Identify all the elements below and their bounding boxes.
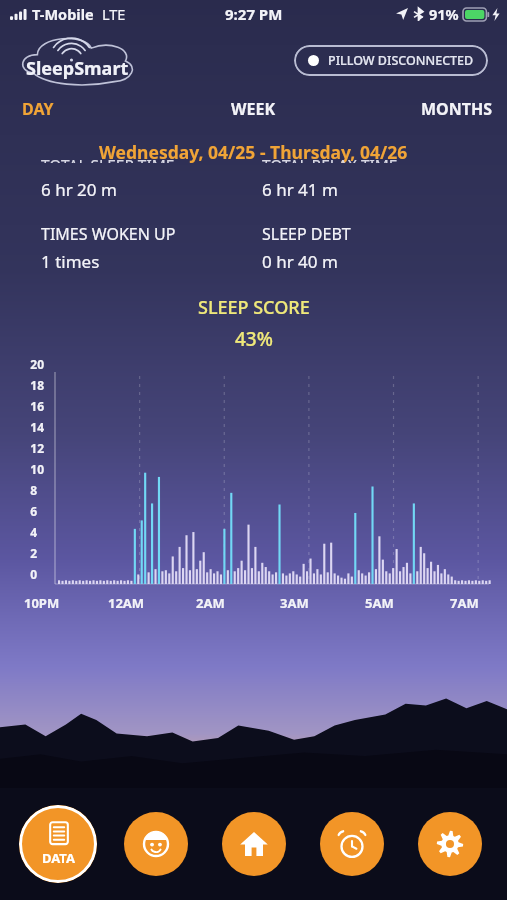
button[interactable]: Alarm — [320, 812, 384, 876]
button[interactable]: MONTHS — [338, 92, 507, 126]
staticText: 16 — [30, 398, 44, 414]
staticText: DATA — [42, 849, 75, 867]
staticText: 1 times — [41, 250, 100, 273]
staticText: 5AM — [365, 594, 394, 612]
staticText: SLEEP DEBT — [262, 223, 351, 245]
staticText: SLEEP SCORE — [198, 295, 310, 320]
staticText: DAY — [22, 98, 54, 120]
button[interactable]: Home — [222, 812, 286, 876]
staticText: 14 — [30, 419, 44, 435]
staticText: 18 — [30, 377, 44, 393]
staticText: 12 — [30, 440, 44, 456]
staticText: 9:27 PM — [225, 4, 283, 24]
staticText: T-Mobile — [32, 4, 94, 24]
staticText: 7AM — [450, 594, 479, 612]
staticText: 91% — [429, 4, 459, 24]
button[interactable]: PILLOW DISCONNECTED — [294, 45, 488, 76]
staticText: TOTAL RELAX TIME — [262, 155, 398, 163]
staticText: WEEK — [231, 98, 276, 120]
staticText: Wednesday, 04/25 - Thursday, 04/26 — [99, 140, 408, 164]
staticText: MONTHS — [421, 98, 493, 120]
staticText: 6 — [30, 503, 37, 519]
button[interactable]: WEEK — [169, 92, 338, 126]
staticText: 3AM — [280, 594, 309, 612]
staticText: 12AM — [108, 594, 145, 612]
button[interactable]: Baby — [124, 812, 188, 876]
staticText: 10PM — [24, 594, 60, 612]
staticText: 0 hr 40 m — [262, 250, 338, 273]
staticText: 0 — [30, 566, 37, 582]
staticText: 20 — [30, 356, 44, 372]
button[interactable]: Settings — [418, 812, 482, 876]
staticText: 2 — [30, 545, 37, 561]
staticText: SleepSmart — [26, 56, 129, 81]
button[interactable]: Data — [19, 805, 97, 883]
staticText: 2AM — [196, 594, 225, 612]
staticText: 4 — [30, 524, 37, 540]
staticText: 10 — [30, 461, 44, 477]
staticText: 6 hr 20 m — [41, 178, 117, 201]
staticText: TIMES WOKEN UP — [41, 223, 176, 245]
button[interactable]: SleepSmart logo — [22, 33, 132, 87]
staticText: TOTAL SLEEP TIME — [41, 155, 175, 163]
staticText: 8 — [30, 482, 37, 498]
staticText: 43% — [235, 326, 273, 352]
staticText: 6 hr 41 m — [262, 178, 338, 201]
staticText: LTE — [102, 4, 126, 24]
staticText: PILLOW DISCONNECTED — [328, 52, 474, 69]
button[interactable]: DAY — [0, 92, 169, 126]
